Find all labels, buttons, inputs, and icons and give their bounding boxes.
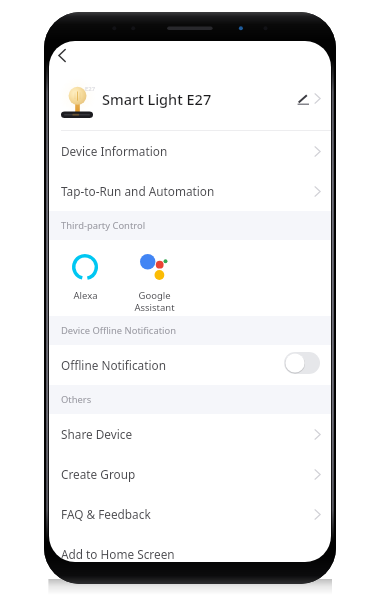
button[interactable]: Add to Home Screen	[49, 534, 331, 562]
staticText: Device Information	[61, 143, 168, 159]
button[interactable]: E27	[49, 71, 331, 126]
button[interactable]: Share Device	[49, 414, 331, 454]
staticText: Third-party Control	[61, 219, 146, 232]
staticText: Alexa	[73, 289, 98, 302]
staticText: Offline Notification	[61, 357, 166, 373]
staticText: Others	[61, 393, 92, 406]
staticText: E27	[85, 85, 96, 93]
button[interactable]: Tap-to-Run and Automation	[49, 171, 331, 211]
button[interactable]: Edit name	[295, 91, 311, 107]
button[interactable]: Alexa	[54, 240, 116, 302]
button[interactable]: Create Group	[49, 454, 331, 494]
button[interactable]: Offline Notification	[284, 352, 320, 374]
staticText: Device Offline Notification	[61, 324, 176, 337]
button[interactable]: Device Information	[49, 131, 331, 171]
button[interactable]: Offline Notification	[49, 345, 331, 385]
staticText: Google Assistant	[134, 289, 175, 314]
button[interactable]: FAQ & Feedback	[49, 494, 331, 534]
staticText: Tap-to-Run and Automation	[61, 183, 215, 199]
staticText: FAQ & Feedback	[61, 506, 151, 522]
staticText: Create Group	[61, 466, 136, 482]
staticText: Smart Light E27	[102, 89, 212, 109]
staticText: Add to Home Screen	[61, 546, 175, 562]
button[interactable]: Back	[49, 42, 75, 68]
staticText: Share Device	[61, 426, 133, 442]
button[interactable]: Google Assistant	[123, 240, 185, 314]
